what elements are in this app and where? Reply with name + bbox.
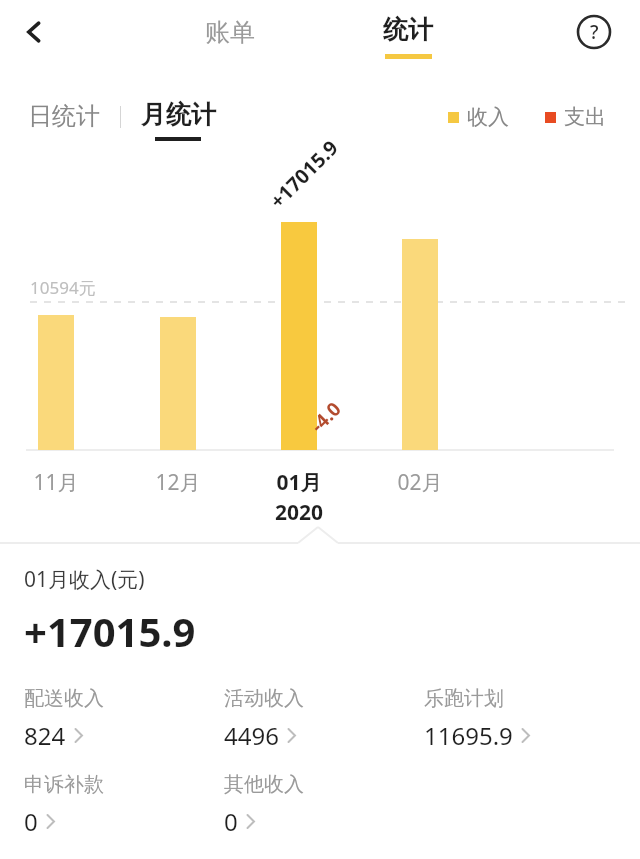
- staticText: 月统计: [141, 99, 216, 130]
- staticText: 收入: [467, 104, 509, 130]
- staticText: 支出: [564, 104, 606, 130]
- button[interactable]: 配送收入: [24, 686, 224, 752]
- staticText: 01月收入(元): [24, 565, 145, 594]
- button[interactable]: 申诉补款: [24, 772, 224, 838]
- staticText: 0: [224, 805, 238, 838]
- button[interactable]: 活动收入: [224, 686, 424, 752]
- button[interactable]: Help: [568, 6, 620, 58]
- staticText: 0: [24, 805, 38, 838]
- staticText: 其他收入: [224, 772, 304, 797]
- staticText: 824: [24, 719, 66, 752]
- staticText: 账单: [205, 17, 255, 48]
- staticText: 4496: [224, 719, 279, 752]
- button[interactable]: 统计: [364, 6, 452, 70]
- button[interactable]: 账单: [186, 6, 274, 58]
- button[interactable]: 其他收入: [224, 772, 424, 838]
- staticText: ?: [590, 19, 599, 45]
- staticText: +17015.9: [24, 604, 196, 658]
- staticText: 配送收入: [24, 686, 104, 711]
- button[interactable]: 月统计: [132, 94, 224, 150]
- button[interactable]: Back: [8, 6, 60, 58]
- staticText: 统计: [383, 14, 433, 45]
- staticText: 日统计: [28, 101, 100, 131]
- staticText: 活动收入: [224, 686, 304, 711]
- staticText: 申诉补款: [24, 772, 104, 797]
- button[interactable]: 日统计: [18, 94, 110, 138]
- button[interactable]: 乐跑计划: [424, 686, 624, 752]
- staticText: 11695.9: [424, 719, 513, 752]
- staticText: 乐跑计划: [424, 686, 504, 711]
